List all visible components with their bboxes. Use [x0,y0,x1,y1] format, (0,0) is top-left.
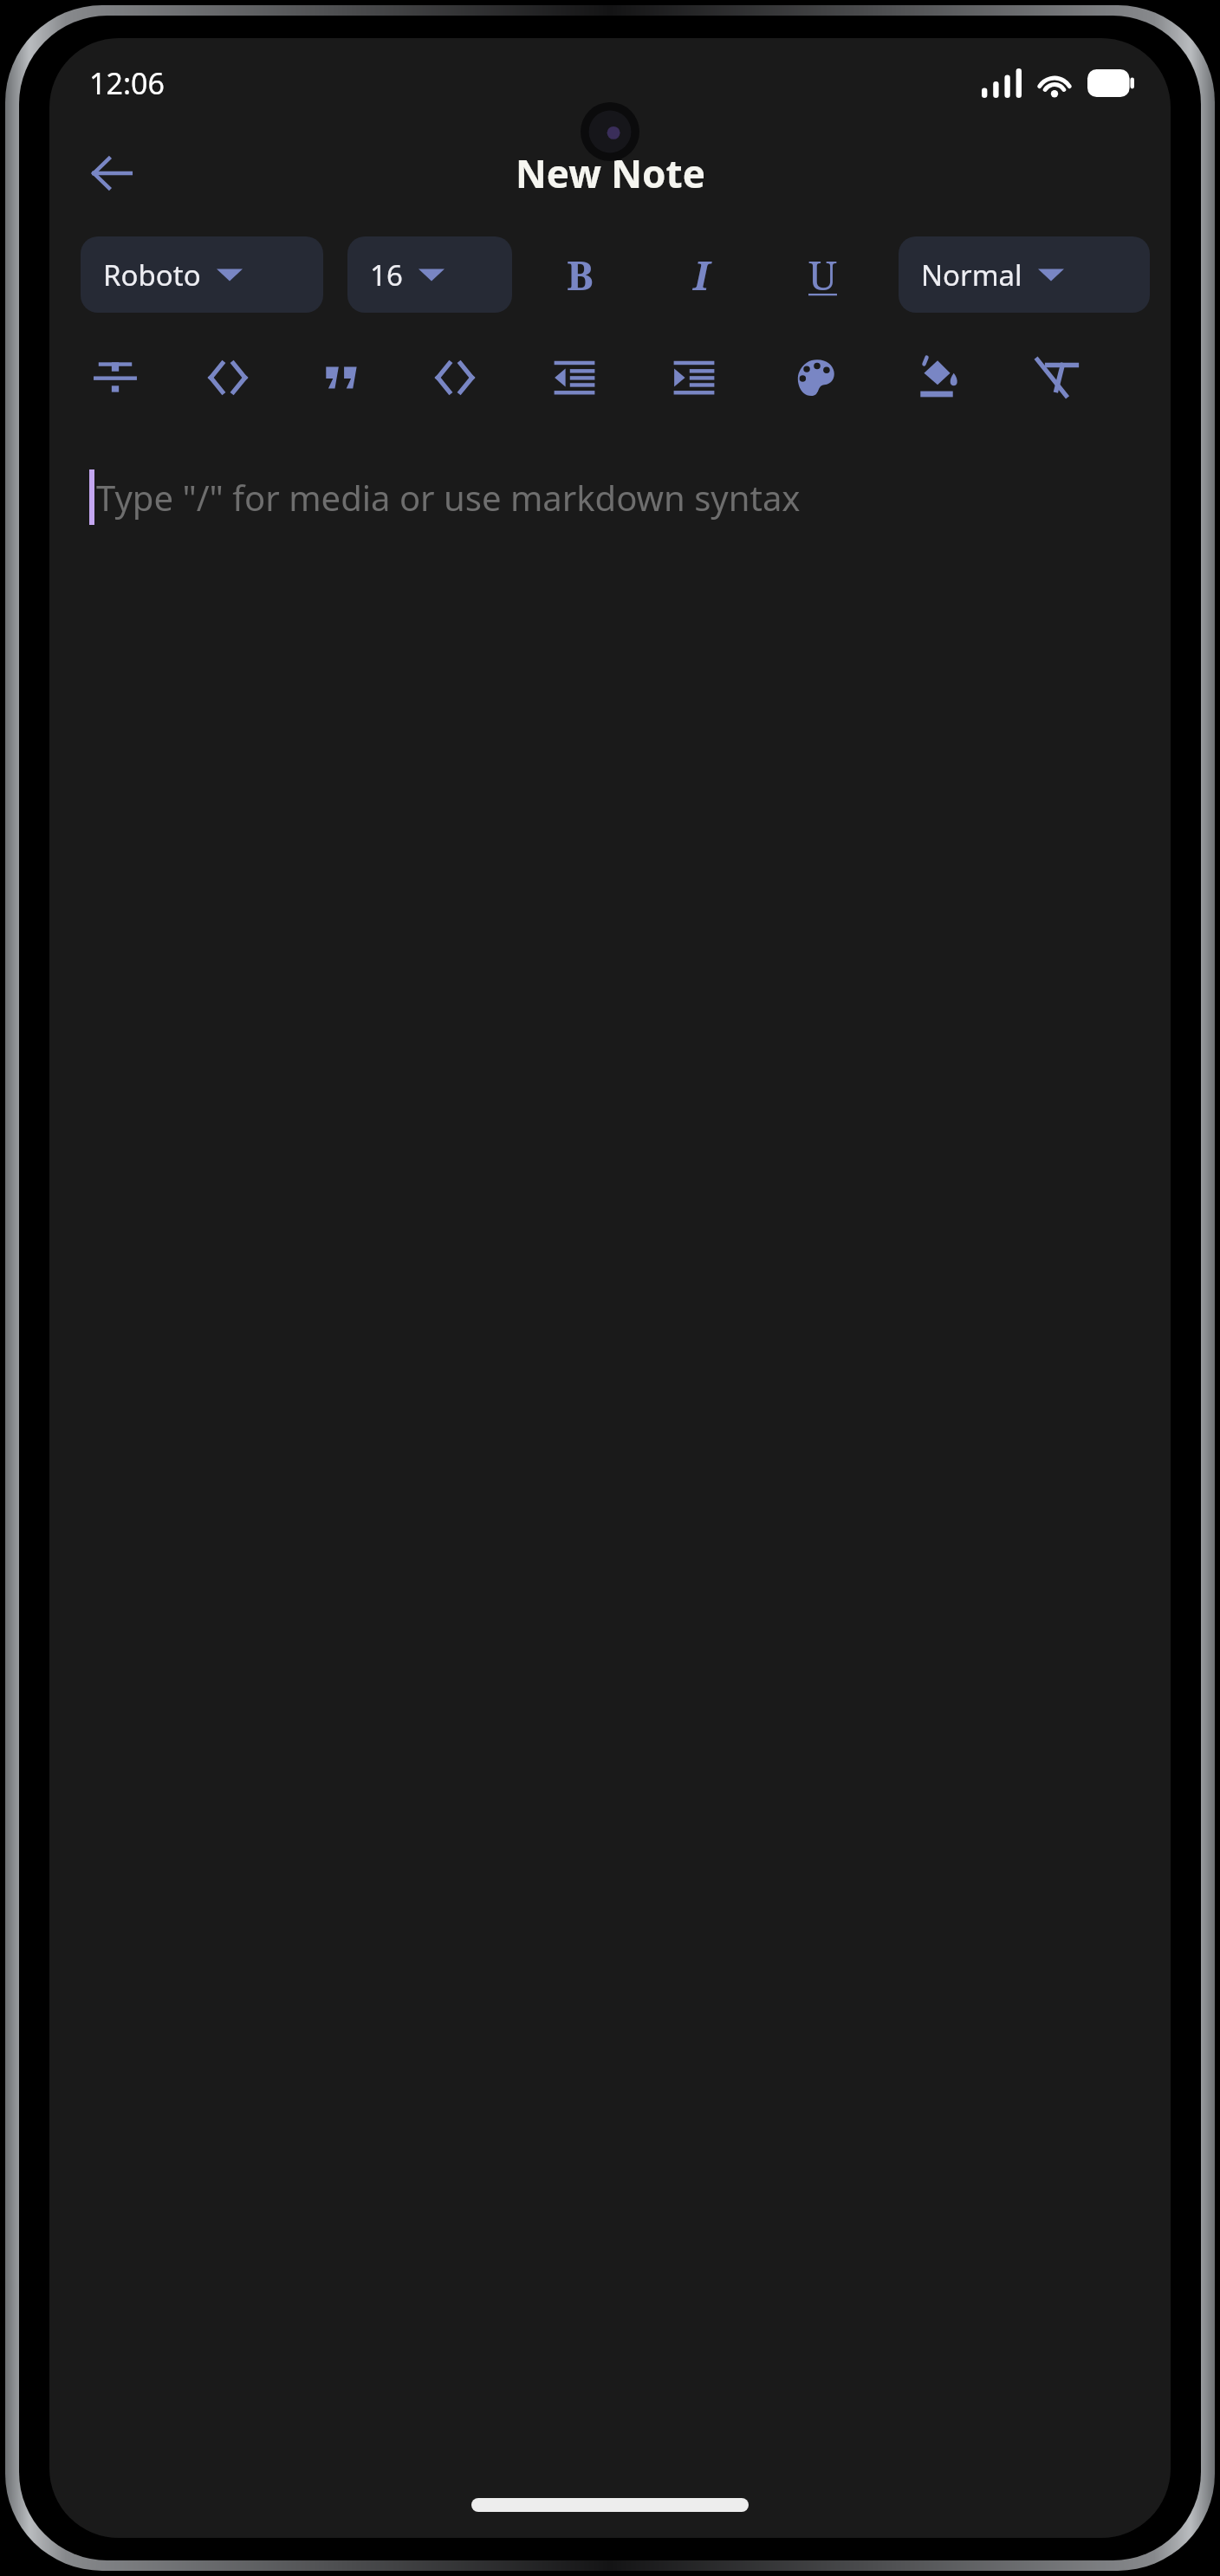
staticText: Roboto [103,256,201,294]
staticText: I [693,248,710,302]
staticText: Type "/" for media or use markdown synta… [96,474,801,521]
staticText: B [567,248,594,302]
button[interactable]: Text color [789,350,845,405]
button[interactable]: Clear formatting [1029,350,1084,405]
staticText: 12:06 [89,63,165,103]
button[interactable]: Code [200,350,256,405]
staticText: Normal [921,256,1022,294]
button[interactable]: Roboto [81,236,323,313]
button[interactable]: Vertical align [88,350,143,405]
button[interactable]: Code block [427,350,483,405]
staticText: U [808,248,837,302]
button[interactable]: Decrease indent [547,350,602,405]
staticText: New Note [516,147,705,199]
staticText: 16 [370,256,403,294]
button[interactable]: Back [70,132,153,215]
button[interactable]: U [791,236,853,313]
button[interactable]: Normal [899,236,1150,313]
button[interactable]: B [548,236,611,313]
button[interactable]: Quote [315,350,370,405]
button[interactable]: Increase indent [666,350,722,405]
button[interactable]: I [670,236,732,313]
button[interactable]: Type "/" for media or use markdown synta… [49,445,1171,549]
button[interactable]: 16 [347,236,512,313]
button[interactable]: Fill color [909,350,964,405]
